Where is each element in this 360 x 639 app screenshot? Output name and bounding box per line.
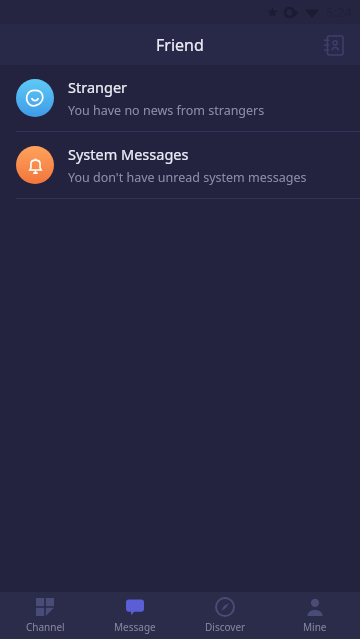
button[interactable]: Stranger (0, 65, 360, 131)
button[interactable]: System Messages (0, 132, 360, 198)
staticText: Mine (303, 620, 327, 634)
staticText: Friend (156, 34, 204, 56)
button[interactable]: Contacts (316, 28, 350, 62)
button[interactable]: Channel (0, 592, 90, 639)
staticText: Stranger (68, 77, 128, 97)
button[interactable]: Discover (180, 592, 270, 639)
staticText: You have no news from strangers (68, 102, 265, 119)
staticText: You don't have unread system messages (68, 169, 307, 186)
button[interactable]: Mine (270, 592, 360, 639)
staticText: Message (114, 620, 156, 634)
staticText: Channel (26, 620, 65, 634)
button[interactable]: Message (90, 592, 180, 639)
staticText: Discover (205, 620, 246, 634)
staticText: System Messages (68, 144, 189, 164)
